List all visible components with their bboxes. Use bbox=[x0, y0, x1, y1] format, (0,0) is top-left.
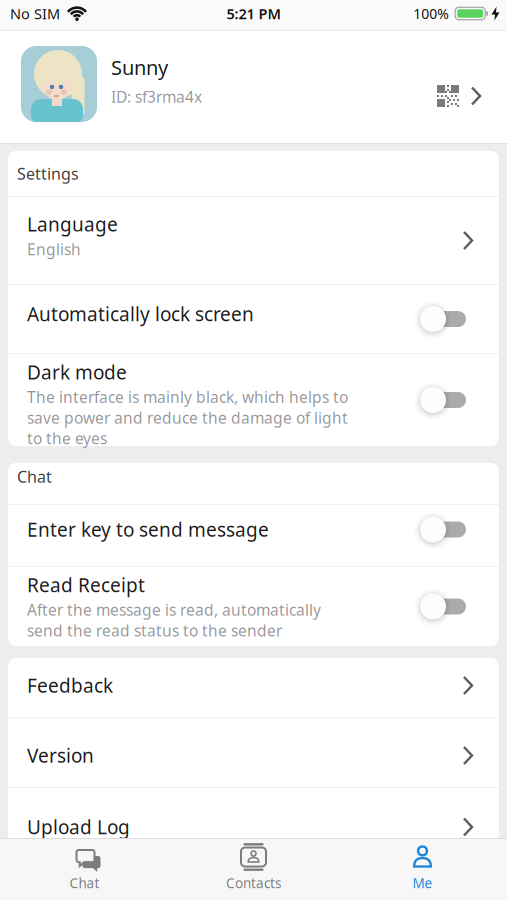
staticText: Contacts bbox=[226, 874, 281, 892]
staticText: Enter key to send message bbox=[27, 517, 269, 542]
staticText: Dark mode bbox=[27, 359, 127, 385]
staticText: English bbox=[27, 239, 81, 259]
staticText: Version bbox=[27, 743, 94, 768]
button[interactable]: Sunny bbox=[0, 31, 507, 143]
staticText: Feedback bbox=[27, 673, 113, 698]
button[interactable]: Upload Log bbox=[8, 788, 499, 866]
staticText: Chat bbox=[69, 874, 99, 892]
staticText: Automatically lock screen bbox=[27, 301, 254, 327]
staticText: Settings bbox=[17, 163, 79, 184]
button[interactable]: Version bbox=[8, 718, 499, 787]
staticText: After the message is read, automatically… bbox=[27, 599, 321, 641]
staticText: 5:21 PM bbox=[226, 4, 280, 23]
button[interactable]: Dark mode bbox=[8, 354, 499, 446]
button[interactable]: Read Receipt bbox=[8, 567, 499, 646]
staticText: Upload Log bbox=[27, 814, 130, 840]
staticText: Language bbox=[27, 212, 118, 237]
button[interactable]: Chat bbox=[0, 844, 169, 892]
button[interactable]: Me bbox=[338, 844, 507, 892]
button[interactable]: Feedback bbox=[8, 658, 499, 717]
button[interactable]: Enter key to send message bbox=[8, 505, 499, 566]
staticText: ID: sf3rma4x bbox=[111, 86, 202, 107]
button[interactable]: Contacts bbox=[169, 844, 338, 892]
staticText: 100% bbox=[413, 4, 449, 23]
button[interactable]: Language bbox=[8, 197, 499, 284]
button[interactable]: Automatically lock screen bbox=[8, 285, 499, 353]
staticText: Sunny bbox=[111, 54, 168, 80]
staticText: The interface is mainly black, which hel… bbox=[27, 387, 348, 448]
staticText: Me bbox=[412, 874, 432, 892]
staticText: Read Receipt bbox=[27, 572, 145, 597]
staticText: Chat bbox=[17, 466, 52, 487]
staticText: No SIM bbox=[10, 4, 60, 23]
